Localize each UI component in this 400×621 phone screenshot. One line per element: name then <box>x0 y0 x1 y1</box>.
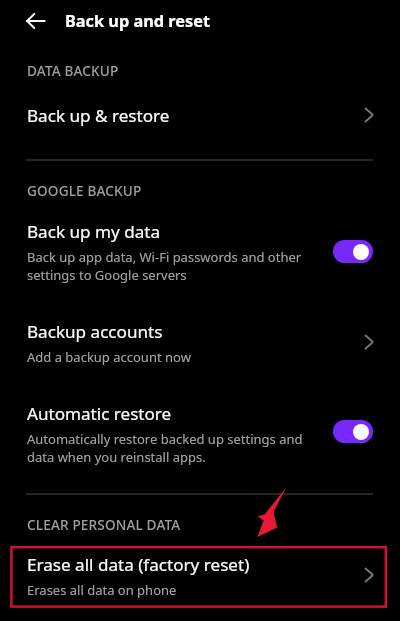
staticText: Back up app data, Wi-Fi passwords and ot… <box>27 248 302 284</box>
staticText: Back up and reset <box>65 10 211 32</box>
button[interactable]: Back <box>17 3 53 39</box>
button[interactable]: Automatic restore, switch on <box>333 420 373 443</box>
button[interactable] <box>0 547 400 607</box>
staticText: Erase all data (factory reset) <box>27 553 250 576</box>
button[interactable]: Open Erase all data (factory reset) <box>355 561 383 589</box>
button[interactable]: Open Backup accounts <box>355 328 383 356</box>
button[interactable] <box>0 305 400 380</box>
staticText: Backup accounts <box>27 320 163 343</box>
staticText: Automatically restore backed up settings… <box>27 430 303 466</box>
button[interactable]: Open Back up & restore <box>355 101 383 129</box>
staticText: DATA BACKUP <box>27 61 119 80</box>
button[interactable] <box>0 388 400 478</box>
staticText: Automatic restore <box>27 402 172 425</box>
button[interactable] <box>0 90 400 145</box>
staticText: GOOGLE BACKUP <box>27 181 142 200</box>
staticText: CLEAR PERSONAL DATA <box>27 515 181 534</box>
staticText: Erases all data on phone <box>27 581 177 599</box>
button[interactable]: Back up my data, switch on <box>333 240 373 263</box>
staticText: Back up my data <box>27 220 161 243</box>
button[interactable] <box>0 208 400 298</box>
staticText: Back up & restore <box>27 104 170 127</box>
staticText: Add a backup account now <box>27 348 191 366</box>
